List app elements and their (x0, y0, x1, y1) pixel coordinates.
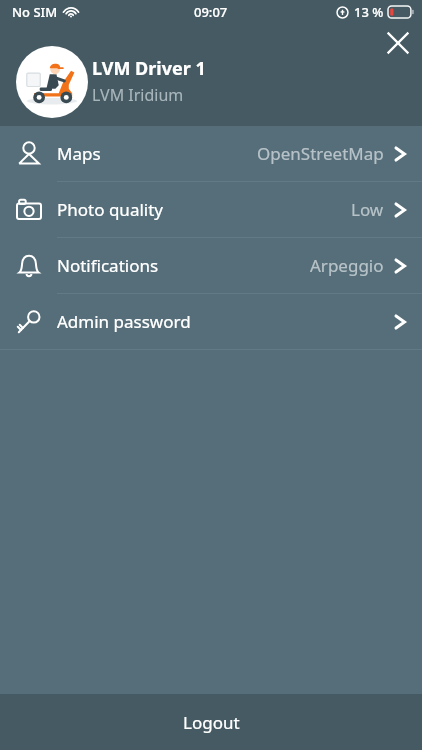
staticText: Notifications (57, 254, 159, 277)
button[interactable]: Close (376, 21, 420, 65)
staticText: Logout (183, 711, 240, 734)
button[interactable]: Notifications (0, 238, 422, 293)
button[interactable]: Maps (0, 126, 422, 181)
staticText: 09:07 (194, 3, 228, 21)
button[interactable]: Admin password (0, 294, 422, 349)
button[interactable]: Logout (0, 694, 422, 750)
staticText: Photo quality (57, 198, 163, 221)
staticText: Maps (57, 142, 101, 165)
staticText: Admin password (57, 310, 191, 333)
staticText: 13 % (354, 3, 384, 21)
staticText: LVM Iridium (92, 84, 184, 106)
staticText: Arpeggio (310, 254, 384, 277)
button[interactable]: Photo quality (0, 182, 422, 237)
staticText: No SIM (12, 3, 58, 21)
staticText: LVM Driver 1 (92, 56, 206, 81)
staticText: Low (351, 198, 384, 221)
staticText: OpenStreetMap (257, 142, 384, 165)
